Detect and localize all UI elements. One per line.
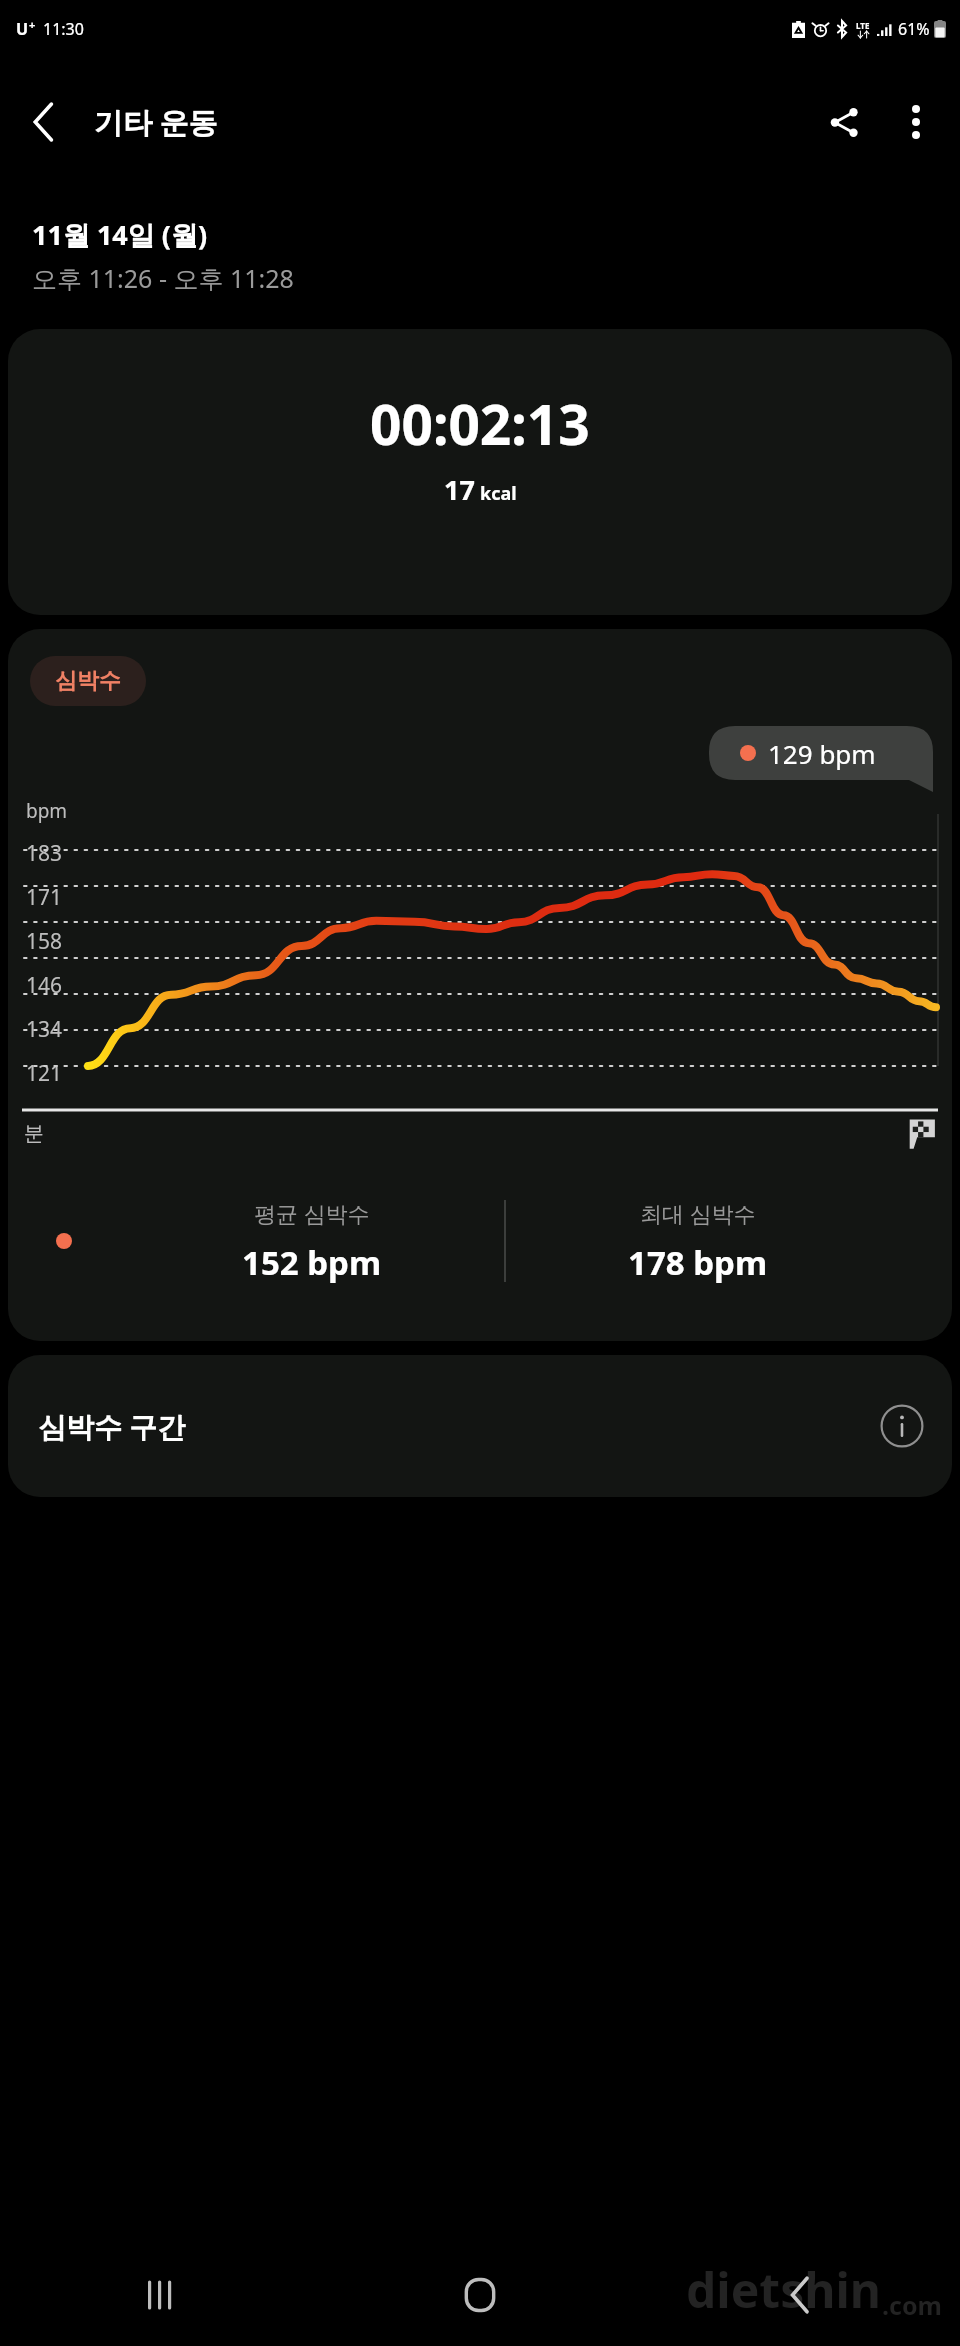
button[interactable]: Recent apps [0,2244,320,2346]
staticText: 183 [26,839,63,868]
staticText: 00:02:13 [370,386,590,461]
button[interactable]: 00:02:13 [8,329,952,615]
staticText: 146 [26,971,63,1000]
button[interactable]: Info [878,1402,926,1450]
staticText: 158 [26,927,63,956]
staticText: 17 [444,471,475,508]
button[interactable]: 심박수 [30,656,146,706]
button[interactable]: Back [10,88,78,156]
button[interactable]: More options [882,88,950,156]
button[interactable]: Back [640,2244,960,2346]
staticText: LTE [856,20,870,31]
staticText: 최대 심박수 [640,1198,756,1228]
staticText: + [29,17,36,32]
staticText: 61% [898,18,930,40]
staticText: kcal [480,481,517,506]
staticText: 171 [26,883,63,912]
staticText: 평균 심박수 [254,1198,370,1228]
button[interactable]: 심박수 구간 [8,1355,952,1497]
button[interactable]: Home [320,2244,640,2346]
staticText: 분 [24,1121,44,1146]
staticText: 기타 운동 [94,102,218,142]
staticText: 11월 14일 (월) [32,216,208,253]
staticText: 152 bpm [242,1240,382,1285]
staticText: 129 bpm [768,736,876,771]
staticText: bpm [26,798,68,824]
button[interactable]: Share [810,88,878,156]
staticText: 11:30 [43,18,84,40]
staticText: 심박수 [55,667,121,695]
staticText: dietshin [686,2257,882,2322]
staticText: 134 [26,1015,63,1044]
staticText: 178 bpm [628,1240,768,1285]
staticText: U [16,18,29,40]
staticText: .com [882,2288,942,2322]
staticText: 심박수 구간 [38,1407,186,1445]
staticText: 오후 11:26 - 오후 11:28 [32,261,294,295]
staticText: 121 [26,1059,63,1088]
